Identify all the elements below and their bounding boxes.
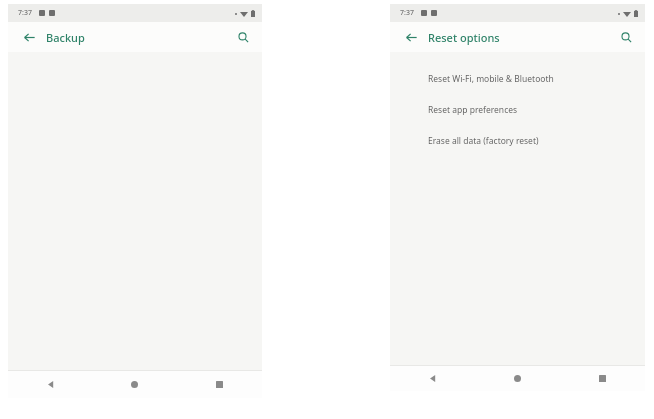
staticText: Reset options — [428, 30, 500, 45]
button[interactable]: Back — [400, 26, 422, 48]
button[interactable]: Search — [232, 26, 254, 48]
button[interactable]: Back — [8, 371, 92, 398]
button[interactable]: Home — [92, 371, 177, 398]
staticText: Reset Wi-Fi, mobile & Bluetooth — [428, 73, 554, 85]
button[interactable]: Recent apps — [177, 371, 262, 398]
staticText: Reset app preferences — [428, 104, 518, 116]
button[interactable]: Reset app preferences — [390, 94, 645, 125]
button[interactable]: Home — [475, 366, 560, 391]
staticText: 7:37 — [400, 8, 414, 18]
button[interactable]: Recent apps — [560, 366, 645, 391]
staticText: Backup — [46, 30, 85, 45]
button[interactable]: Back — [18, 26, 40, 48]
staticText: 7:37 — [18, 8, 32, 18]
button[interactable]: Erase all data (factory reset) — [390, 125, 645, 156]
button[interactable]: Back — [390, 366, 475, 391]
staticText: Erase all data (factory reset) — [428, 135, 539, 147]
button[interactable]: Search — [615, 26, 637, 48]
button[interactable]: Reset Wi-Fi, mobile & Bluetooth — [390, 63, 645, 94]
